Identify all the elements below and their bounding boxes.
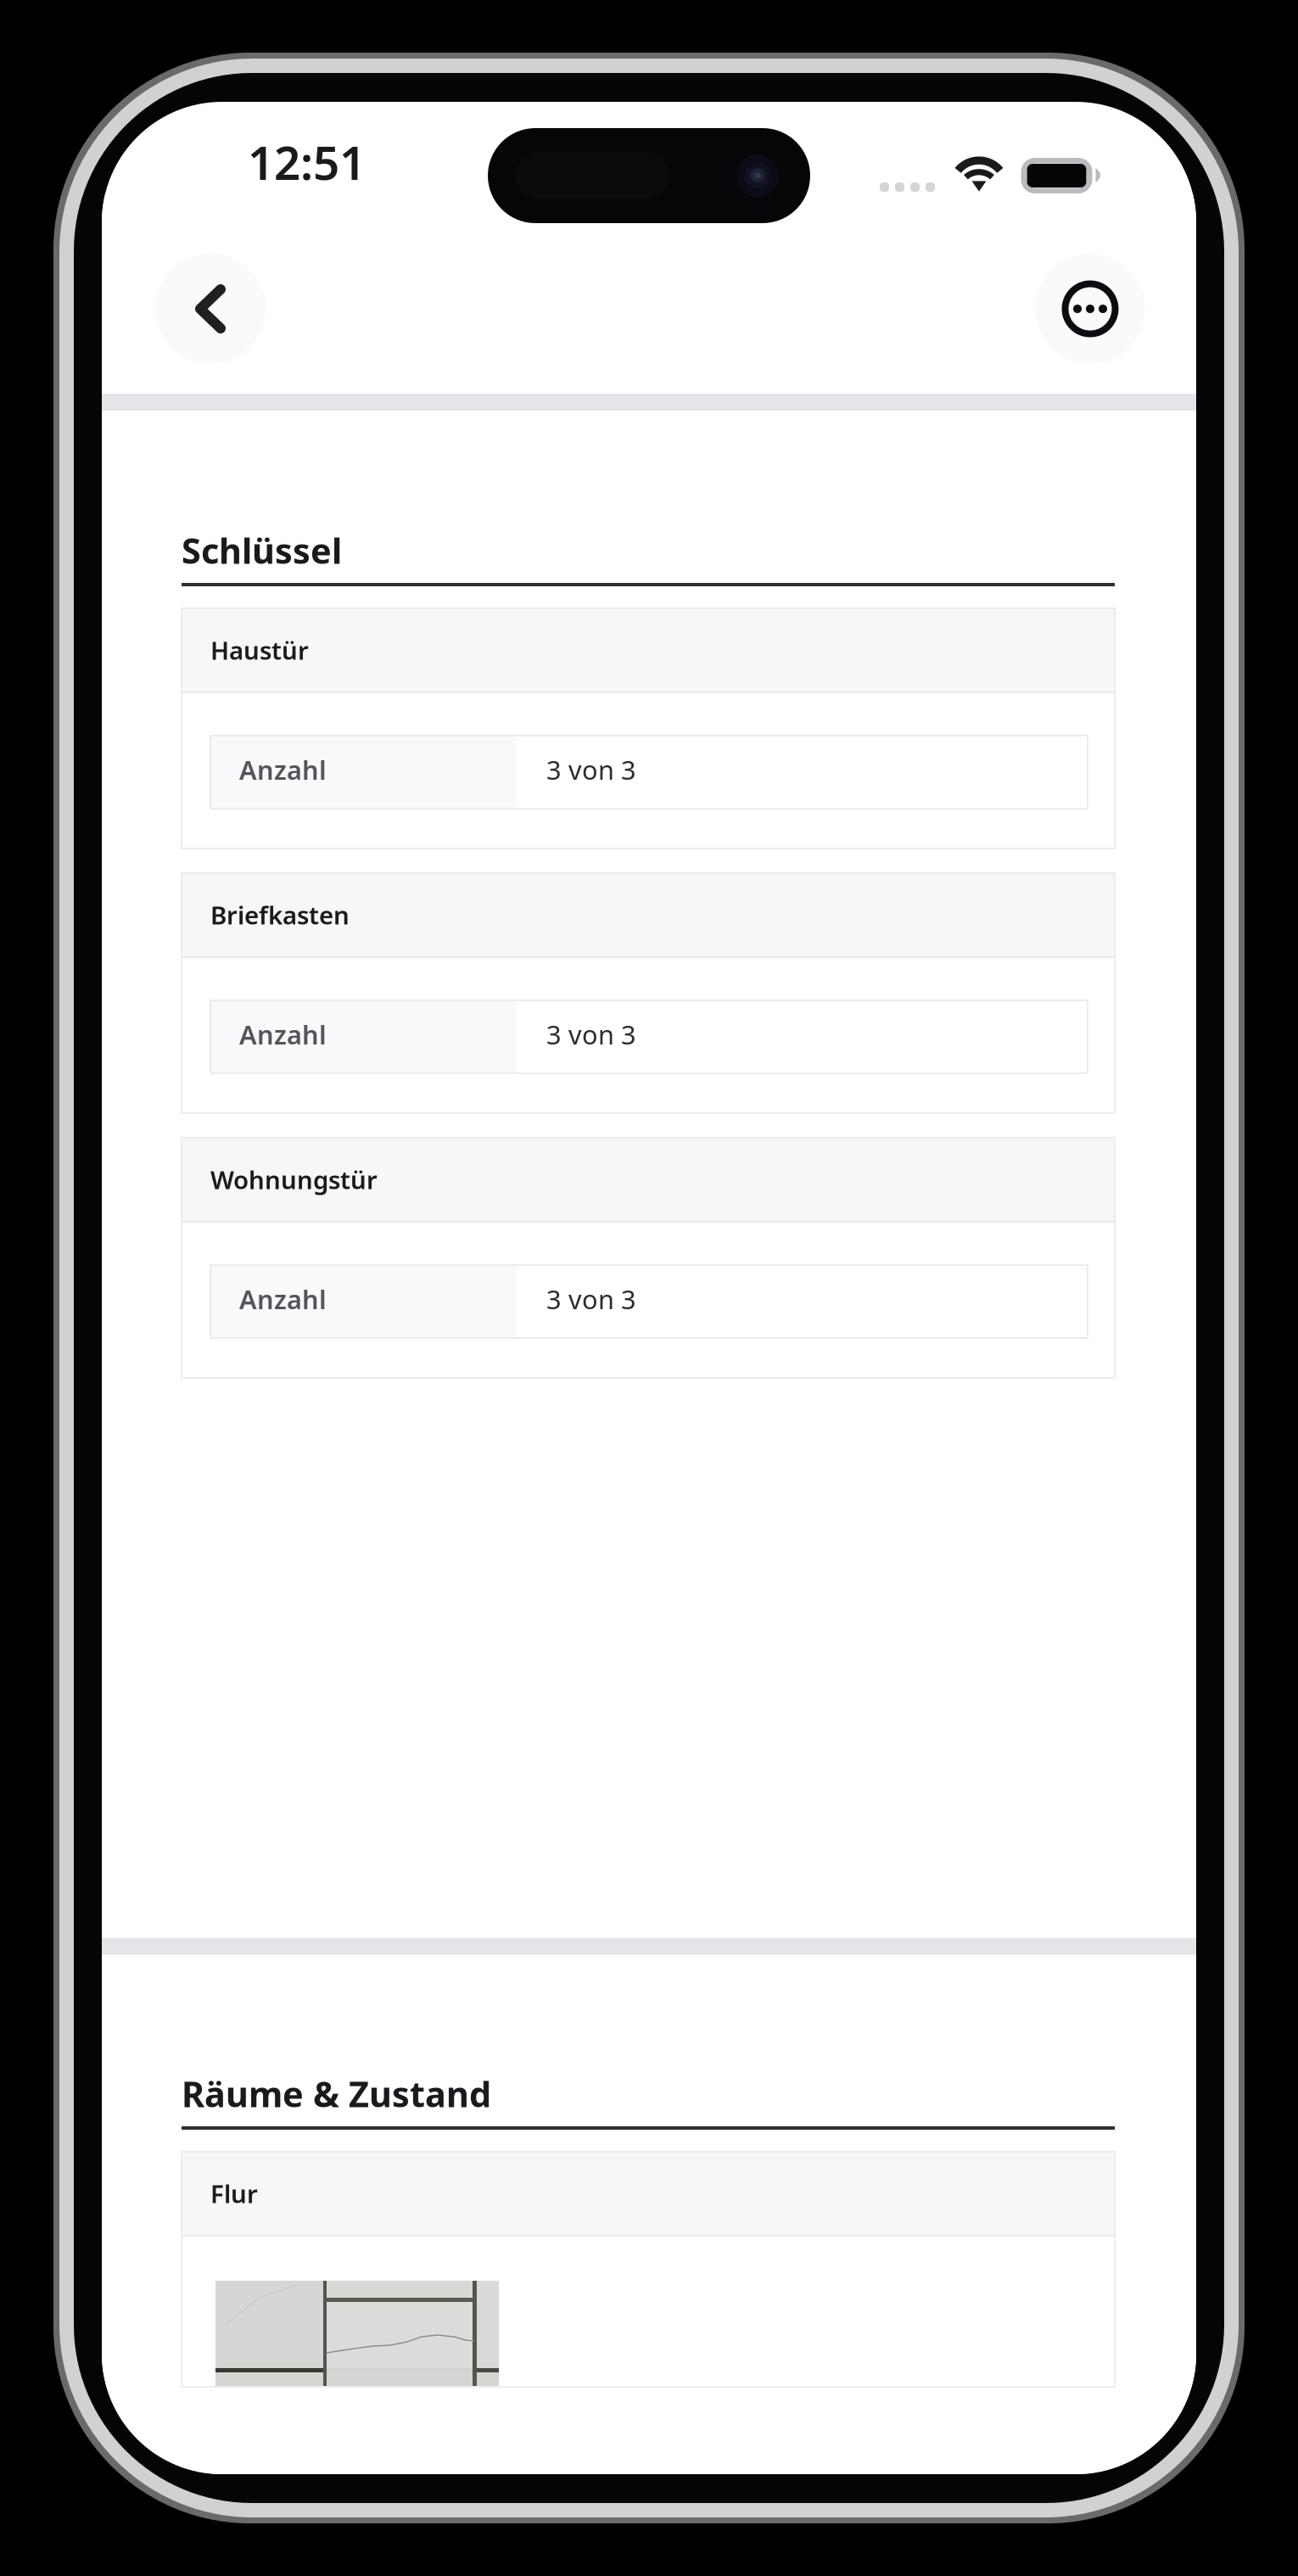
staticText: Haustür bbox=[210, 633, 309, 666]
button[interactable]: More options bbox=[1035, 254, 1145, 364]
staticText: Schlüssel bbox=[182, 527, 342, 574]
staticText: Anzahl bbox=[239, 1017, 327, 1052]
staticText: 3 von 3 bbox=[546, 1282, 636, 1316]
staticText: 12:51 bbox=[248, 131, 366, 193]
staticText: Räume & Zustand bbox=[182, 2070, 491, 2117]
staticText: Briefkasten bbox=[210, 898, 350, 931]
staticText: 3 von 3 bbox=[546, 1017, 636, 1052]
staticText: Flur bbox=[210, 2177, 258, 2210]
staticText: Anzahl bbox=[239, 752, 327, 787]
staticText: Anzahl bbox=[239, 1282, 327, 1316]
button[interactable]: Back bbox=[155, 254, 266, 364]
staticText: 3 von 3 bbox=[546, 752, 636, 787]
staticText: Wohnungstür bbox=[210, 1163, 378, 1196]
